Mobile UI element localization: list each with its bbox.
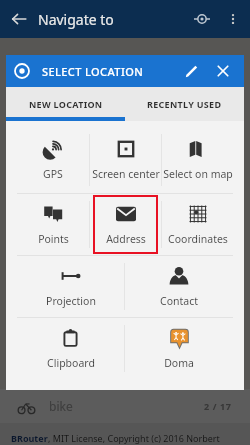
staticText: GPS <box>43 167 63 181</box>
button[interactable]: RECENTLY USED <box>125 87 244 121</box>
staticText: Doma <box>164 356 194 370</box>
button[interactable]: Close <box>210 58 236 84</box>
staticText: RECENTLY USED <box>147 98 222 110</box>
button[interactable]: Coordinates <box>162 194 233 255</box>
button[interactable]: Screen center <box>90 127 161 193</box>
staticText: Contact <box>160 294 198 308</box>
staticText: Points <box>38 232 69 246</box>
button[interactable]: Back <box>0 0 38 38</box>
button[interactable]: Edit <box>178 58 204 84</box>
staticText: Address <box>106 232 146 246</box>
button[interactable]: Address <box>90 194 161 255</box>
staticText: BRouter <box>11 432 48 444</box>
button[interactable]: NEW LOCATION <box>6 87 125 121</box>
staticText: Projection <box>46 294 96 308</box>
staticText: SELECT LOCATION <box>42 64 144 79</box>
button[interactable]: Doma <box>125 318 233 379</box>
button[interactable]: Locate <box>184 1 220 37</box>
staticText: 2 / 17 <box>204 400 232 412</box>
staticText: Clipboard <box>47 356 95 370</box>
staticText: bike <box>49 398 73 414</box>
button[interactable]: Projection <box>17 256 124 317</box>
staticText: Select on map <box>163 167 233 181</box>
button[interactable]: Points <box>17 194 89 255</box>
button[interactable]: Select on map <box>162 127 233 193</box>
button[interactable]: Contact <box>125 256 233 317</box>
staticText: Navigate to <box>38 10 114 29</box>
staticText: , MIT License, Copyright (c) 2016 Norber… <box>48 432 220 444</box>
button[interactable]: Clipboard <box>17 318 124 379</box>
button[interactable]: More options <box>220 6 246 32</box>
staticText: Screen center <box>92 167 160 181</box>
staticText: Coordinates <box>168 232 228 246</box>
staticText: NEW LOCATION <box>29 98 103 110</box>
button[interactable]: GPS <box>17 127 89 193</box>
